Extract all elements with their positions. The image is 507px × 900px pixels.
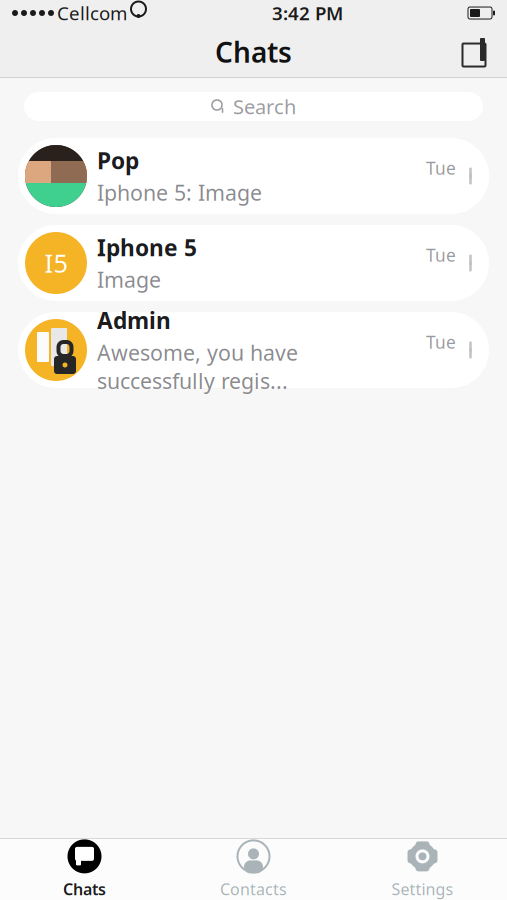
staticText: Cellcom (57, 1, 127, 25)
staticText: 3:42 PM (272, 1, 343, 25)
staticText: Contacts (220, 878, 287, 900)
staticText: I5 (44, 246, 67, 280)
staticText: Settings (391, 878, 453, 900)
staticText: Pop (97, 145, 139, 175)
staticText: Tue (426, 330, 456, 353)
button[interactable]: Settings (338, 839, 507, 899)
button[interactable]: Admin (18, 312, 489, 388)
staticText: Admin (97, 305, 171, 335)
button[interactable]: Search (24, 92, 483, 121)
staticText: Iphone 5: Image (97, 178, 262, 207)
button[interactable]: Pop (18, 138, 489, 214)
staticText: Search (233, 93, 296, 120)
staticText: Chats (215, 33, 292, 71)
button[interactable]: New message (455, 30, 499, 74)
staticText: Chats (63, 878, 106, 900)
staticText: Iphone 5 (97, 232, 197, 262)
staticText: Tue (426, 243, 456, 266)
button[interactable]: I5 (18, 225, 489, 301)
staticText: Tue (426, 156, 456, 179)
button[interactable]: Contacts (169, 839, 338, 899)
staticText: Image (97, 265, 161, 294)
staticText: Awesome, you have successfully regis... (97, 338, 298, 395)
button[interactable]: Chats (0, 839, 169, 899)
